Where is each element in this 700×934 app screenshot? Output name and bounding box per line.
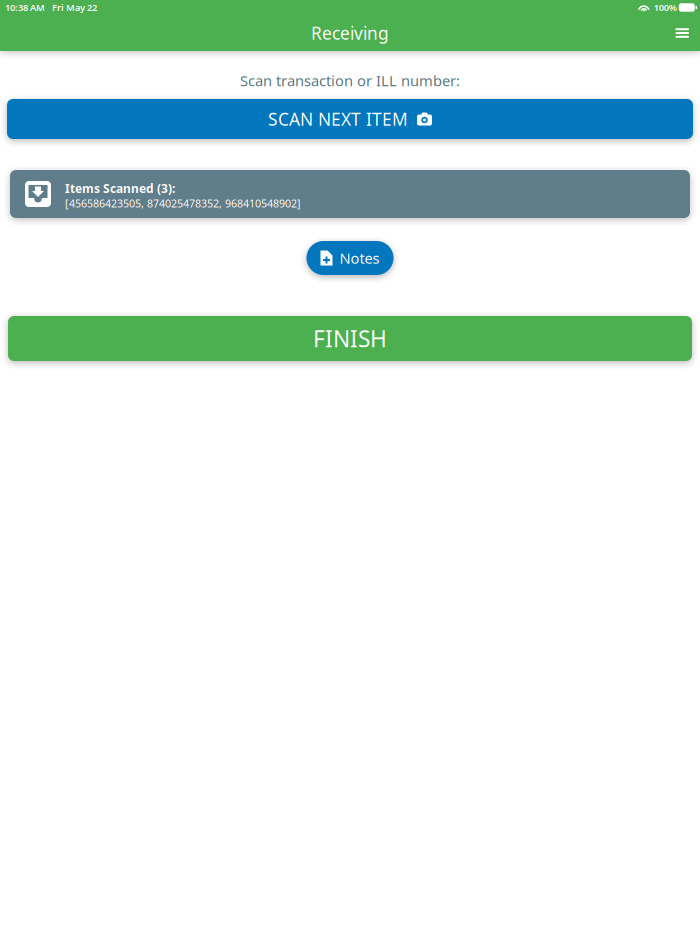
button[interactable]: FINISH <box>8 316 692 361</box>
staticText: 10:38 AM <box>5 1 45 14</box>
staticText: 100% <box>654 1 677 14</box>
staticText: Fri May 22 <box>52 1 97 14</box>
staticText: [456586423505, 874025478352, 96841054890… <box>65 196 301 211</box>
button[interactable]: Notes <box>306 241 393 275</box>
button[interactable]: SCAN NEXT ITEM <box>7 99 693 139</box>
staticText: Scan transaction or ILL number: <box>240 71 460 90</box>
staticText: Receiving <box>311 21 389 44</box>
button[interactable]: Menu <box>664 18 700 48</box>
staticText: Items Scanned (3): <box>65 180 175 196</box>
staticText: Notes <box>339 248 379 268</box>
staticText: FINISH <box>313 323 387 353</box>
staticText: SCAN NEXT ITEM <box>268 107 408 130</box>
